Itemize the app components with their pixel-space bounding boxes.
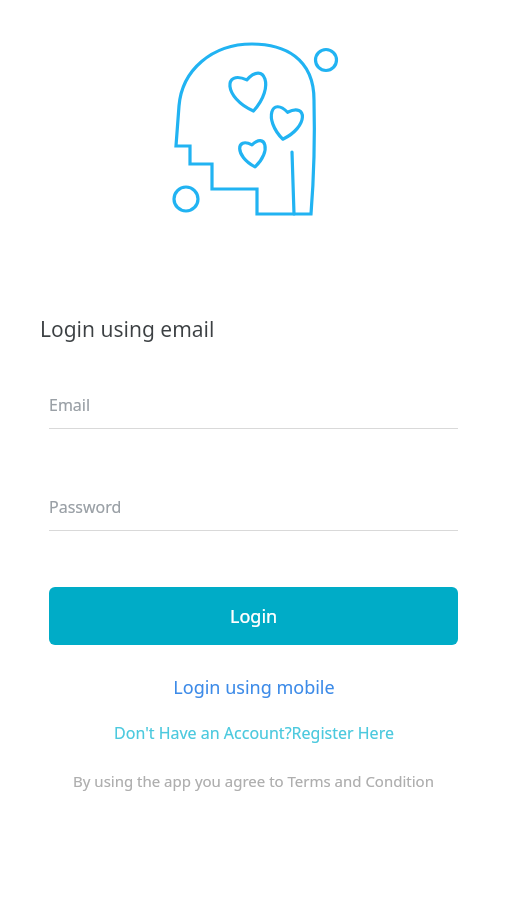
button[interactable]: Login (49, 587, 458, 645)
button[interactable]: Password (49, 496, 458, 531)
staticText: Login using email (40, 315, 215, 344)
button[interactable]: Email (49, 394, 458, 429)
button[interactable]: By using the app you agree to Terms and … (62, 771, 445, 791)
staticText: Password (49, 496, 122, 518)
staticText: Email (49, 394, 91, 416)
staticText: By using the app you agree to Terms and … (73, 771, 434, 791)
staticText: Don't Have an Account?Register Here (114, 722, 394, 744)
button[interactable]: Login using mobile (0, 675, 507, 700)
staticText: Login (230, 604, 278, 629)
staticText: Login using mobile (173, 675, 335, 700)
button[interactable]: Don't Have an Account?Register Here (0, 722, 507, 744)
